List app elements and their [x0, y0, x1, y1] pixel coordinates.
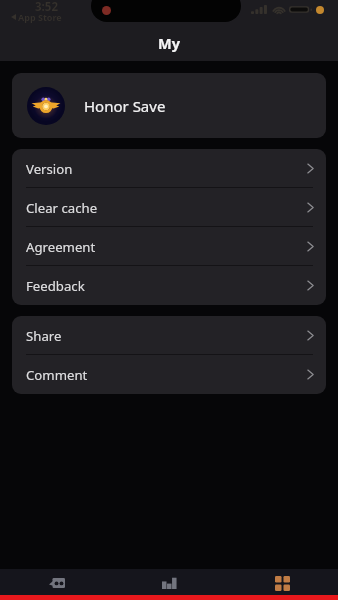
staticText: Share [26, 327, 62, 345]
staticText: Clear cache [26, 199, 98, 217]
button[interactable]: Version [12, 149, 326, 188]
staticText: App Store [18, 11, 62, 23]
staticText: Version [26, 160, 73, 178]
button[interactable]: Clear cache [12, 188, 326, 227]
staticText: Feedback [26, 277, 85, 295]
button[interactable]: Comment [12, 355, 326, 394]
staticText: 3:52 [35, 0, 58, 15]
button[interactable]: Statistics [112, 569, 225, 595]
staticText: My [158, 33, 180, 53]
button[interactable]: Share [12, 316, 326, 355]
staticText: Honor Save [84, 96, 166, 116]
staticText: Comment [26, 366, 88, 384]
button[interactable]: Videos [0, 569, 112, 595]
button[interactable]: Feedback [12, 266, 326, 305]
staticText: Agreement [26, 238, 96, 256]
button[interactable]: Honor Save [12, 73, 326, 138]
button[interactable]: Agreement [12, 227, 326, 266]
button[interactable]: Grid [225, 569, 338, 595]
